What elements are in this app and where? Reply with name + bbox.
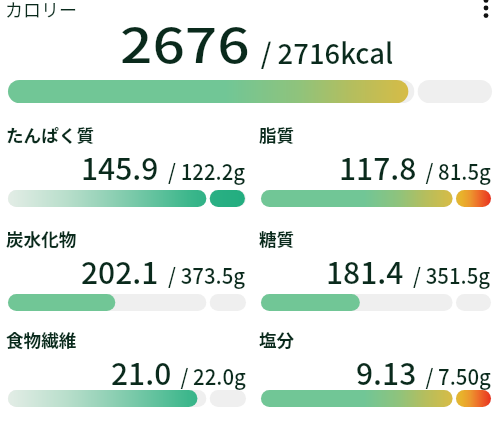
- staticText: / 22.0g: [180, 360, 246, 391]
- staticText: たんぱく質: [6, 122, 94, 147]
- staticText: 糖質: [259, 226, 295, 251]
- staticText: 食物繊維: [6, 327, 77, 352]
- staticText: / 122.2g: [168, 155, 246, 186]
- staticText: / 373.5g: [168, 259, 246, 290]
- staticText: 117.8: [339, 145, 417, 188]
- staticText: 145.9: [81, 145, 159, 188]
- staticText: カロリー: [5, 0, 77, 22]
- staticText: / 7.50g: [425, 360, 491, 391]
- staticText: 炭水化物: [6, 226, 77, 251]
- button[interactable]: More options: [474, 0, 498, 20]
- staticText: 21.0: [111, 350, 172, 393]
- staticText: 2676: [120, 7, 250, 77]
- staticText: 脂質: [259, 122, 295, 147]
- staticText: / 351.5g: [413, 259, 491, 290]
- staticText: 181.4: [326, 249, 404, 292]
- staticText: 9.13: [356, 350, 417, 393]
- staticText: 塩分: [259, 327, 295, 352]
- staticText: / 2716kcal: [261, 32, 394, 73]
- staticText: 202.1: [81, 249, 159, 292]
- staticText: / 81.5g: [425, 155, 491, 186]
